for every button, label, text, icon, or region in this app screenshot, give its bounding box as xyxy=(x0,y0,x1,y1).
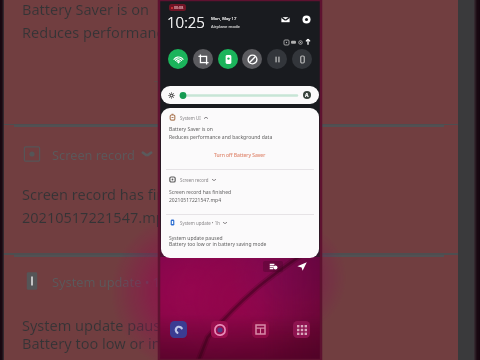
button[interactable]: System update • 1h xyxy=(0,255,458,360)
staticText: System update • 1h xyxy=(180,220,220,226)
staticText: Battery too low or in battery saving mod… xyxy=(169,241,267,248)
staticText: Mon, May 17 xyxy=(211,16,237,22)
button[interactable]: System UI xyxy=(161,108,319,169)
staticText: Reduces performance and background data xyxy=(22,22,322,42)
staticText: Screen record has finished xyxy=(22,184,203,204)
staticText: Turn off Battery Saver xyxy=(154,75,303,95)
button[interactable]: Do not disturb xyxy=(242,49,262,69)
staticText: 20210517221547.mp4 xyxy=(22,207,173,227)
staticText: Screen record has finished xyxy=(169,189,232,196)
button[interactable]: System update • 1h xyxy=(161,214,319,258)
staticText: System update • 1h xyxy=(52,273,169,290)
button[interactable]: Calculator xyxy=(252,321,269,338)
button[interactable]: Phone xyxy=(170,321,187,338)
button[interactable]: Navigation xyxy=(296,260,308,272)
staticText: 00:08 xyxy=(174,5,184,10)
staticText: Reduces performance and background data xyxy=(169,134,273,141)
staticText: 10:25 xyxy=(167,12,205,32)
button[interactable]: System UI xyxy=(0,0,458,124)
staticText: Airplane mode xyxy=(211,24,240,30)
staticText: Battery Saver is on xyxy=(169,126,213,133)
button[interactable]: Brightness slider xyxy=(161,86,319,104)
staticText: System update paused xyxy=(22,315,178,335)
button[interactable]: Media xyxy=(267,49,287,69)
staticText: 20210517221547.mp4 xyxy=(169,197,221,204)
button[interactable]: Screenshot xyxy=(193,49,213,69)
button[interactable]: Screen record xyxy=(0,125,458,253)
staticText: System UI xyxy=(180,115,201,121)
button[interactable]: Media widget xyxy=(263,261,283,272)
button[interactable]: Auto brightness xyxy=(303,91,311,99)
button[interactable]: Screen recorder xyxy=(218,49,238,69)
staticText: Screen record xyxy=(180,177,209,183)
button[interactable]: Camera xyxy=(211,321,228,338)
staticText: System update paused xyxy=(169,235,223,242)
button[interactable]: Vibrate xyxy=(292,49,312,69)
staticText: Battery too low or in battery saving mod… xyxy=(22,333,305,353)
staticText: Battery Saver is on xyxy=(22,0,150,19)
button[interactable]: Screen record xyxy=(161,169,319,213)
button[interactable]: Apps xyxy=(293,321,310,338)
staticText: A xyxy=(305,92,309,99)
button[interactable]: Wi-Fi xyxy=(168,49,188,69)
button[interactable]: Settings xyxy=(301,14,312,25)
staticText: Turn off Battery Saver xyxy=(214,152,266,159)
button[interactable]: Messages xyxy=(280,14,291,25)
staticText: Screen record xyxy=(52,146,135,163)
